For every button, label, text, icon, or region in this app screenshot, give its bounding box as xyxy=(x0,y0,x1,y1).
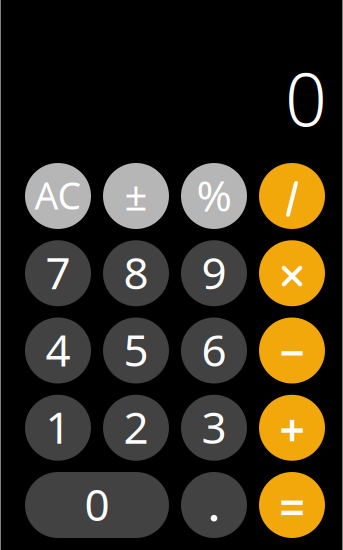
button[interactable]: Plus minus xyxy=(103,163,169,229)
button[interactable]: Equals xyxy=(259,472,325,538)
staticText: 0 xyxy=(285,49,327,147)
button[interactable]: 9 xyxy=(181,240,247,306)
button[interactable]: Decimal point xyxy=(181,472,247,538)
staticText: AC xyxy=(34,170,81,220)
staticText: 4 xyxy=(45,320,70,379)
staticText: ± xyxy=(124,168,147,221)
button[interactable]: 5 xyxy=(103,317,169,383)
button[interactable]: All clear xyxy=(25,163,91,229)
staticText: 7 xyxy=(45,243,70,301)
button[interactable]: 0 xyxy=(25,472,169,538)
button[interactable]: 1 xyxy=(25,395,91,461)
button[interactable]: 4 xyxy=(25,317,91,383)
staticText: 6 xyxy=(201,320,226,379)
button[interactable]: Multiply xyxy=(259,240,325,306)
button[interactable]: 6 xyxy=(181,317,247,383)
button[interactable]: Plus xyxy=(259,395,325,461)
button[interactable]: Minus xyxy=(259,317,325,383)
staticText: 1 xyxy=(45,397,70,456)
staticText: 2 xyxy=(123,397,148,456)
staticText: 5 xyxy=(123,320,148,379)
button[interactable]: Divide xyxy=(259,163,325,229)
staticText: 8 xyxy=(123,243,148,301)
staticText: 0 xyxy=(84,475,109,533)
button[interactable]: 7 xyxy=(25,240,91,306)
button[interactable]: Percent xyxy=(181,163,247,229)
button[interactable]: 8 xyxy=(103,240,169,306)
button[interactable]: 3 xyxy=(181,395,247,461)
staticText: 9 xyxy=(201,243,226,301)
button[interactable]: 2 xyxy=(103,395,169,461)
staticText: 3 xyxy=(201,397,226,456)
staticText: % xyxy=(196,167,231,223)
